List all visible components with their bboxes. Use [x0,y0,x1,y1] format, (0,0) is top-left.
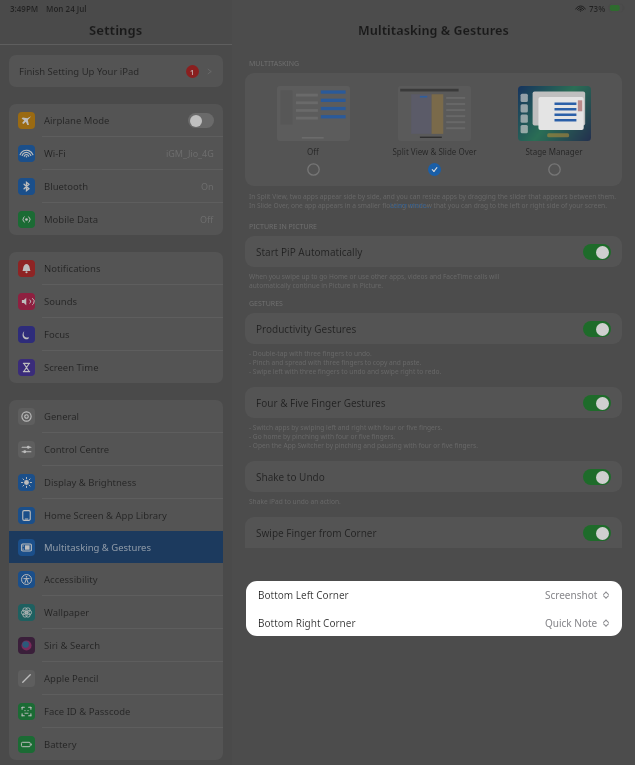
staticText: General [44,410,80,423]
button[interactable]: Control Centre [9,433,223,465]
staticText: 1 [190,67,195,77]
button[interactable]: Four & Five Finger Gestures [245,387,622,418]
staticText: Shake iPad to undo an action. [249,497,341,506]
staticText: Mon 24 Jul [46,3,87,14]
button[interactable]: Sounds [9,285,223,317]
button[interactable]: Siri & Search [9,629,223,661]
staticText: Screenshot [545,588,598,602]
button[interactable]: Home Screen & App Library [9,499,223,531]
button[interactable]: Learn more... [390,201,432,210]
staticText: Accessibility [44,573,98,586]
staticText: 3:49PM [10,3,39,14]
staticText: Bottom Left Corner [258,588,349,602]
staticText: Off [307,146,319,157]
button[interactable]: Mobile Data [9,203,223,235]
staticText: Start PiP Automatically [256,245,363,259]
staticText: Sounds [44,295,78,308]
staticText: Settings [89,21,143,39]
button[interactable]: Bottom Left Corner [246,581,622,609]
staticText: Display & Brightness [44,476,137,489]
staticText: Control Centre [44,443,110,456]
button[interactable]: Start PiP Automatically [245,236,622,267]
staticText: Four & Five Finger Gestures [256,396,386,410]
other: Change Bottom Right Corner action [602,619,610,627]
staticText: - Double-tap with three fingers to undo.… [249,349,442,376]
staticText: Apple Pencil [44,672,99,685]
button[interactable]: Finish Setting Up Your iPad [9,55,223,87]
staticText: Focus [44,328,70,341]
staticText: In Split View, two apps appear side by s… [249,192,618,210]
staticText: Bottom Right Corner [258,616,356,630]
staticText: Mobile Data [44,213,98,226]
staticText: PICTURE IN PICTURE [249,222,317,232]
staticText: 73% [589,3,606,14]
button[interactable]: Wallpaper [9,596,223,628]
staticText: Learn more... [390,201,432,210]
staticText: Shake to Undo [256,470,325,484]
staticText: Face ID & Passcode [44,705,131,718]
staticText: Wallpaper [44,606,90,619]
staticText: Stage Manager [525,146,583,157]
staticText: Battery [44,738,77,751]
button[interactable]: Display & Brightness [9,466,223,498]
button[interactable]: Bluetooth [9,170,223,202]
staticText: When you swipe up to go Home or use othe… [249,272,500,290]
button[interactable]: Apple Pencil [9,662,223,694]
staticText: Split View & Slide Over [392,146,477,157]
staticText: On [201,180,214,192]
staticText: MULTITASKING [249,59,300,69]
button[interactable]: Off [261,84,365,176]
button[interactable]: Screen Time [9,351,223,383]
staticText: Off [200,213,214,225]
button[interactable]: Wi-Fi [9,137,223,169]
button[interactable]: Accessibility [9,563,223,595]
button[interactable]: Split View & Slide Over [382,84,486,176]
staticText: iGM_Jio_4G [166,147,214,159]
staticText: Screen Time [44,361,99,374]
button[interactable]: Face ID & Passcode [9,695,223,727]
button[interactable]: General [9,400,223,432]
button[interactable]: Shake to Undo [245,461,622,492]
staticText: Bluetooth [44,180,89,193]
staticText: Swipe Finger from Corner [256,526,377,540]
button[interactable]: Notifications [9,252,223,284]
staticText: Multitasking & Gestures [358,22,509,39]
staticText: Notifications [44,262,101,275]
staticText: Home Screen & App Library [44,509,167,522]
staticText: - Switch apps by swiping left and right … [249,423,478,450]
staticText: Finish Setting Up Your iPad [19,65,140,78]
staticText: GESTURES [249,299,283,309]
staticText: Airplane Mode [44,114,110,127]
staticText: Quick Note [545,616,598,630]
button[interactable]: Battery [9,728,223,760]
button[interactable]: Stage Manager [502,84,606,176]
button[interactable]: Focus [9,318,223,350]
button[interactable]: Bottom Right Corner [246,609,622,636]
button[interactable]: Multitasking & Gestures [9,531,223,563]
staticText: Wi-Fi [44,147,66,160]
button[interactable]: Airplane Mode [9,104,223,136]
button[interactable]: Swipe Finger from Corner [245,517,622,548]
staticText: Productivity Gestures [256,322,357,336]
other: Change Bottom Left Corner action [602,591,610,599]
button[interactable]: Productivity Gestures [245,313,622,344]
staticText: Siri & Search [44,639,101,652]
staticText: Multitasking & Gestures [44,541,152,554]
